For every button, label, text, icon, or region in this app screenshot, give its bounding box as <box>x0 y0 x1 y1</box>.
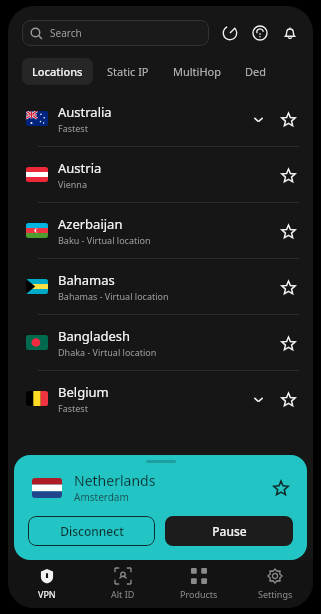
button[interactable]: Locations <box>22 58 93 85</box>
button[interactable]: Austria <box>8 147 313 202</box>
button[interactable]: VPN <box>8 560 85 608</box>
button[interactable]: Favorite Australia <box>277 108 299 130</box>
button[interactable]: Bahamas <box>8 259 313 314</box>
button[interactable]: Disconnect <box>28 516 155 546</box>
button[interactable]: Favorite Azerbaijan <box>277 220 299 242</box>
staticText: Azerbaijan <box>58 215 123 233</box>
button[interactable]: Products <box>161 560 237 608</box>
button[interactable]: Settings <box>237 560 313 608</box>
button[interactable]: Netherlands <box>14 455 307 560</box>
button[interactable]: Favorite Bangladesh <box>277 332 299 354</box>
button[interactable]: Azerbaijan <box>8 203 313 258</box>
button[interactable]: Bangladesh <box>8 315 313 370</box>
staticText: Bahamas - Virtual location <box>58 290 169 302</box>
staticText: Products <box>180 588 218 600</box>
button[interactable]: MultiHop <box>163 58 231 85</box>
staticText: Amsterdam <box>74 490 129 504</box>
staticText: Fastest <box>58 402 88 414</box>
button[interactable]: Expand Belgium <box>247 388 269 410</box>
staticText: Pause <box>212 523 247 539</box>
button[interactable]: Pause <box>165 516 293 546</box>
button[interactable]: Speed test <box>219 22 241 44</box>
staticText: VPN <box>38 588 56 600</box>
button[interactable]: Search <box>22 20 209 46</box>
staticText: Australia <box>58 103 112 121</box>
button[interactable]: Static IP <box>97 58 159 85</box>
button[interactable]: Favorite Netherlands <box>269 476 293 500</box>
staticText: Dhaka - Virtual location <box>58 346 157 358</box>
staticText: Vienna <box>58 178 87 190</box>
staticText: Alt ID <box>111 588 135 600</box>
staticText: Static IP <box>107 64 149 79</box>
button[interactable]: Help <box>249 22 271 44</box>
button[interactable]: Ded <box>235 58 276 85</box>
staticText: MultiHop <box>173 64 221 79</box>
staticText: Netherlands <box>74 471 156 490</box>
staticText: Ded <box>245 64 266 79</box>
staticText: Austria <box>58 159 102 177</box>
button[interactable]: Australia <box>8 91 313 146</box>
staticText: Bangladesh <box>58 327 131 345</box>
staticText: Settings <box>258 588 293 600</box>
staticText: Belgium <box>58 383 109 401</box>
button[interactable]: Alt ID <box>85 560 161 608</box>
staticText: Disconnect <box>60 523 124 539</box>
button[interactable]: Notifications <box>279 22 301 44</box>
button[interactable]: Belgium <box>8 371 313 426</box>
button[interactable]: Favorite Belgium <box>277 388 299 410</box>
staticText: Bahamas <box>58 271 115 289</box>
button[interactable]: Favorite Austria <box>277 164 299 186</box>
staticText: Baku - Virtual location <box>58 234 151 246</box>
button[interactable]: Favorite Bahamas <box>277 276 299 298</box>
staticText: Fastest <box>58 122 88 134</box>
button[interactable]: Expand Australia <box>247 108 269 130</box>
staticText: Locations <box>32 64 83 79</box>
staticText: Search <box>50 26 82 40</box>
